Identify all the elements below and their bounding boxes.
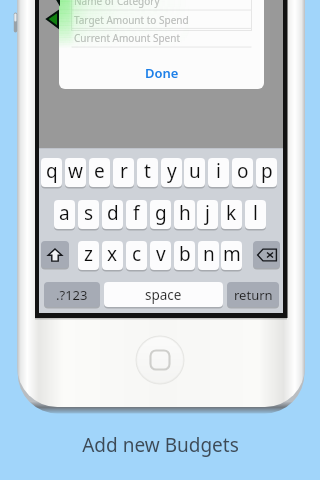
staticText: Name of Category	[74, 0, 160, 8]
staticText: z	[84, 241, 93, 267]
button[interactable]: Name of Category	[74, 0, 252, 10]
button[interactable]: c	[126, 241, 147, 270]
staticText: t	[144, 158, 151, 184]
staticText: a	[59, 200, 70, 226]
staticText: n	[203, 241, 215, 267]
staticText: q	[46, 158, 58, 184]
button[interactable]: b	[174, 241, 195, 270]
staticText: m	[223, 241, 241, 267]
staticText: x	[107, 241, 118, 267]
staticText: r	[120, 158, 128, 184]
staticText: return	[234, 286, 273, 304]
staticText: b	[179, 241, 191, 267]
staticText: o	[237, 158, 249, 184]
button[interactable]: return	[227, 282, 279, 307]
button[interactable]: w	[65, 158, 86, 187]
button[interactable]: a	[54, 200, 75, 229]
button[interactable]: m	[221, 241, 242, 270]
staticText: v	[156, 241, 166, 267]
staticText: c	[132, 241, 142, 267]
staticText: w	[68, 158, 83, 184]
button[interactable]: s	[78, 200, 99, 229]
staticText: Current Amount Spent	[74, 31, 181, 45]
button[interactable]: n	[198, 241, 219, 270]
button[interactable]: q	[41, 158, 62, 187]
staticText: space	[145, 286, 182, 304]
button[interactable]: i	[208, 158, 229, 187]
button[interactable]: space	[104, 282, 223, 307]
staticText: i	[216, 158, 221, 184]
button[interactable]: h	[174, 200, 195, 229]
button[interactable]: .?123	[44, 282, 100, 307]
staticText: j	[205, 200, 210, 226]
button[interactable]: Shift	[41, 241, 69, 268]
staticText: k	[226, 200, 237, 226]
button[interactable]: v	[150, 241, 171, 270]
button[interactable]: z	[78, 241, 99, 270]
staticText: Add new Budgets	[82, 432, 239, 458]
button[interactable]: x	[102, 241, 123, 270]
staticText: d	[107, 200, 119, 226]
button[interactable]: Home	[136, 336, 184, 384]
button[interactable]: Backspace	[253, 241, 280, 268]
button[interactable]: Target Amount to Spend	[74, 10, 252, 29]
staticText: p	[261, 158, 273, 184]
other: Shift	[47, 247, 63, 263]
button[interactable]: t	[137, 158, 158, 187]
button[interactable]: p	[256, 158, 277, 187]
button[interactable]: Done	[59, 52, 264, 89]
staticText: g	[155, 200, 167, 226]
button[interactable]: d	[102, 200, 123, 229]
button[interactable]: g	[150, 200, 171, 229]
button[interactable]: Current Amount Spent	[74, 28, 252, 47]
button[interactable]: e	[89, 158, 110, 187]
button[interactable]: f	[126, 200, 147, 229]
staticText: s	[84, 200, 94, 226]
button[interactable]: l	[245, 200, 266, 229]
button[interactable]: k	[221, 200, 242, 229]
button[interactable]: u	[184, 158, 205, 187]
staticText: h	[179, 200, 191, 226]
button[interactable]: r	[113, 158, 134, 187]
staticText: e	[94, 158, 105, 184]
staticText: f	[133, 200, 140, 226]
staticText: y	[167, 158, 177, 184]
other: Backspace	[257, 248, 277, 262]
staticText: Done	[145, 64, 179, 82]
staticText: l	[253, 200, 258, 226]
staticText: Target Amount to Spend	[74, 13, 189, 27]
button[interactable]: y	[161, 158, 182, 187]
button[interactable]: j	[197, 200, 218, 229]
button[interactable]: o	[232, 158, 253, 187]
staticText: .?123	[56, 286, 88, 304]
staticText: u	[189, 158, 201, 184]
